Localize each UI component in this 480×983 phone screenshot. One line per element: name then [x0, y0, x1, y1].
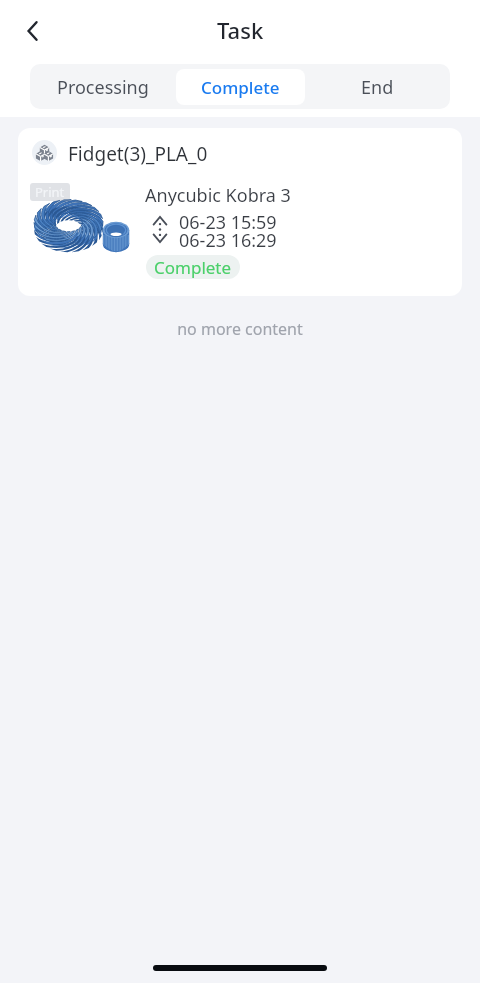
staticText: 06-23 16:29: [179, 228, 277, 253]
button[interactable]: Back: [13, 11, 53, 51]
button[interactable]: Complete: [176, 69, 305, 105]
button[interactable]: End: [305, 69, 450, 105]
staticText: 06-23 15:59: [179, 210, 277, 235]
staticText: Fidget(3)_PLA_0: [68, 141, 208, 167]
staticText: Processing: [57, 75, 149, 100]
staticText: no more content: [0, 318, 480, 340]
staticText: Complete: [154, 256, 232, 279]
staticText: Task: [217, 15, 264, 45]
staticText: Print: [35, 183, 65, 201]
staticText: Complete: [201, 76, 280, 99]
button[interactable]: Complete: [146, 255, 240, 279]
button[interactable]: Processing: [30, 69, 175, 105]
staticText: Anycubic Kobra 3: [145, 183, 291, 208]
button[interactable]: Fidget(3)_PLA_0: [18, 128, 462, 296]
staticText: End: [361, 75, 394, 100]
